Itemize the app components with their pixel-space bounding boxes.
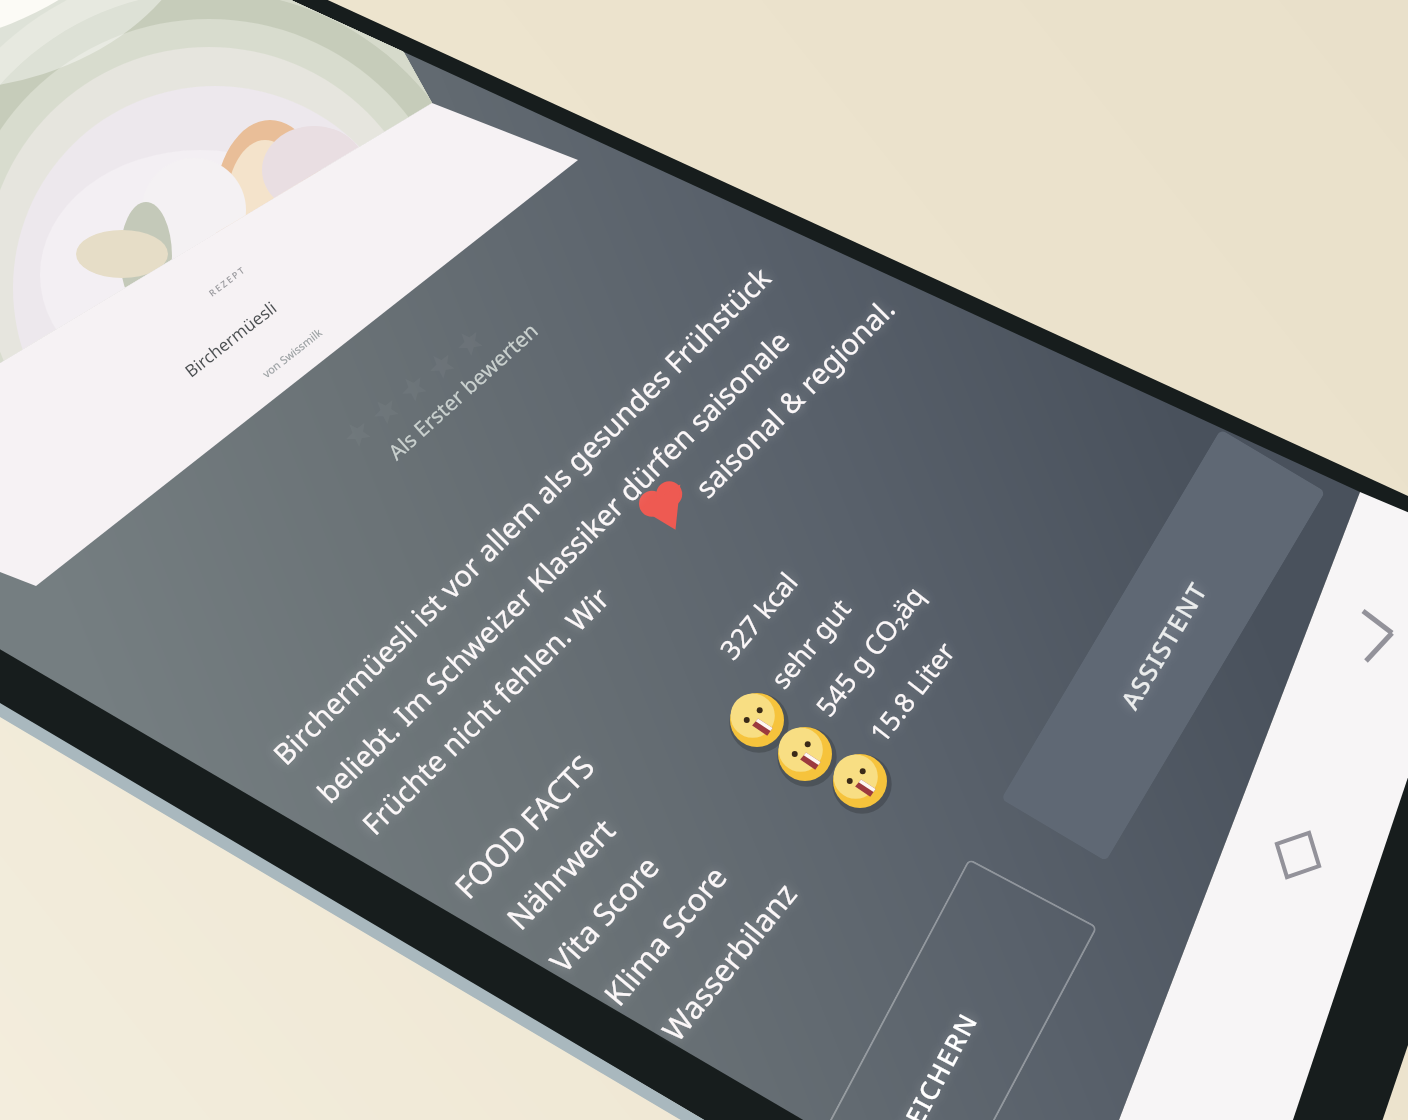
- button[interactable]: ASSISTENT: [1001, 429, 1325, 861]
- button[interactable]: Home: [1272, 766, 1350, 844]
- staticText: 545 g CO₂äq: [807, 578, 932, 724]
- staticText: Vita Score: [540, 846, 668, 981]
- button[interactable]: Rate this recipe: [338, 315, 535, 499]
- staticText: saisonal & regional.: [686, 288, 903, 506]
- button[interactable]: Back: [1345, 541, 1408, 617]
- staticText: Birchermüesli: [180, 296, 282, 382]
- staticText: FOOD FACTS: [445, 746, 603, 907]
- staticText: SPEICHERN: [881, 1006, 985, 1120]
- staticText: Klima Score: [594, 857, 735, 1014]
- staticText: Nährwert: [497, 809, 624, 938]
- staticText: REZEPT: [206, 262, 248, 299]
- staticText: sehr gut: [762, 590, 859, 696]
- staticText: beliebt. Im Schweizer Klassiker dürfen s…: [308, 321, 797, 811]
- staticText: 327 kcal: [711, 564, 806, 667]
- button[interactable]: SPEICHERN: [767, 858, 1098, 1120]
- staticText: Wasserbilanz: [652, 874, 805, 1049]
- staticText: 15.8 Liter: [861, 634, 963, 750]
- staticText: ASSISTENT: [1112, 575, 1215, 715]
- staticText: Birchermüesli ist vor allem als gesundes…: [264, 258, 779, 773]
- staticText: von Swissmilk: [259, 325, 325, 381]
- staticText: Früchte nicht fehlen. Wir: [353, 578, 617, 843]
- staticText: Als Erster bewerten: [382, 316, 545, 467]
- button[interactable]: [0, 61, 448, 639]
